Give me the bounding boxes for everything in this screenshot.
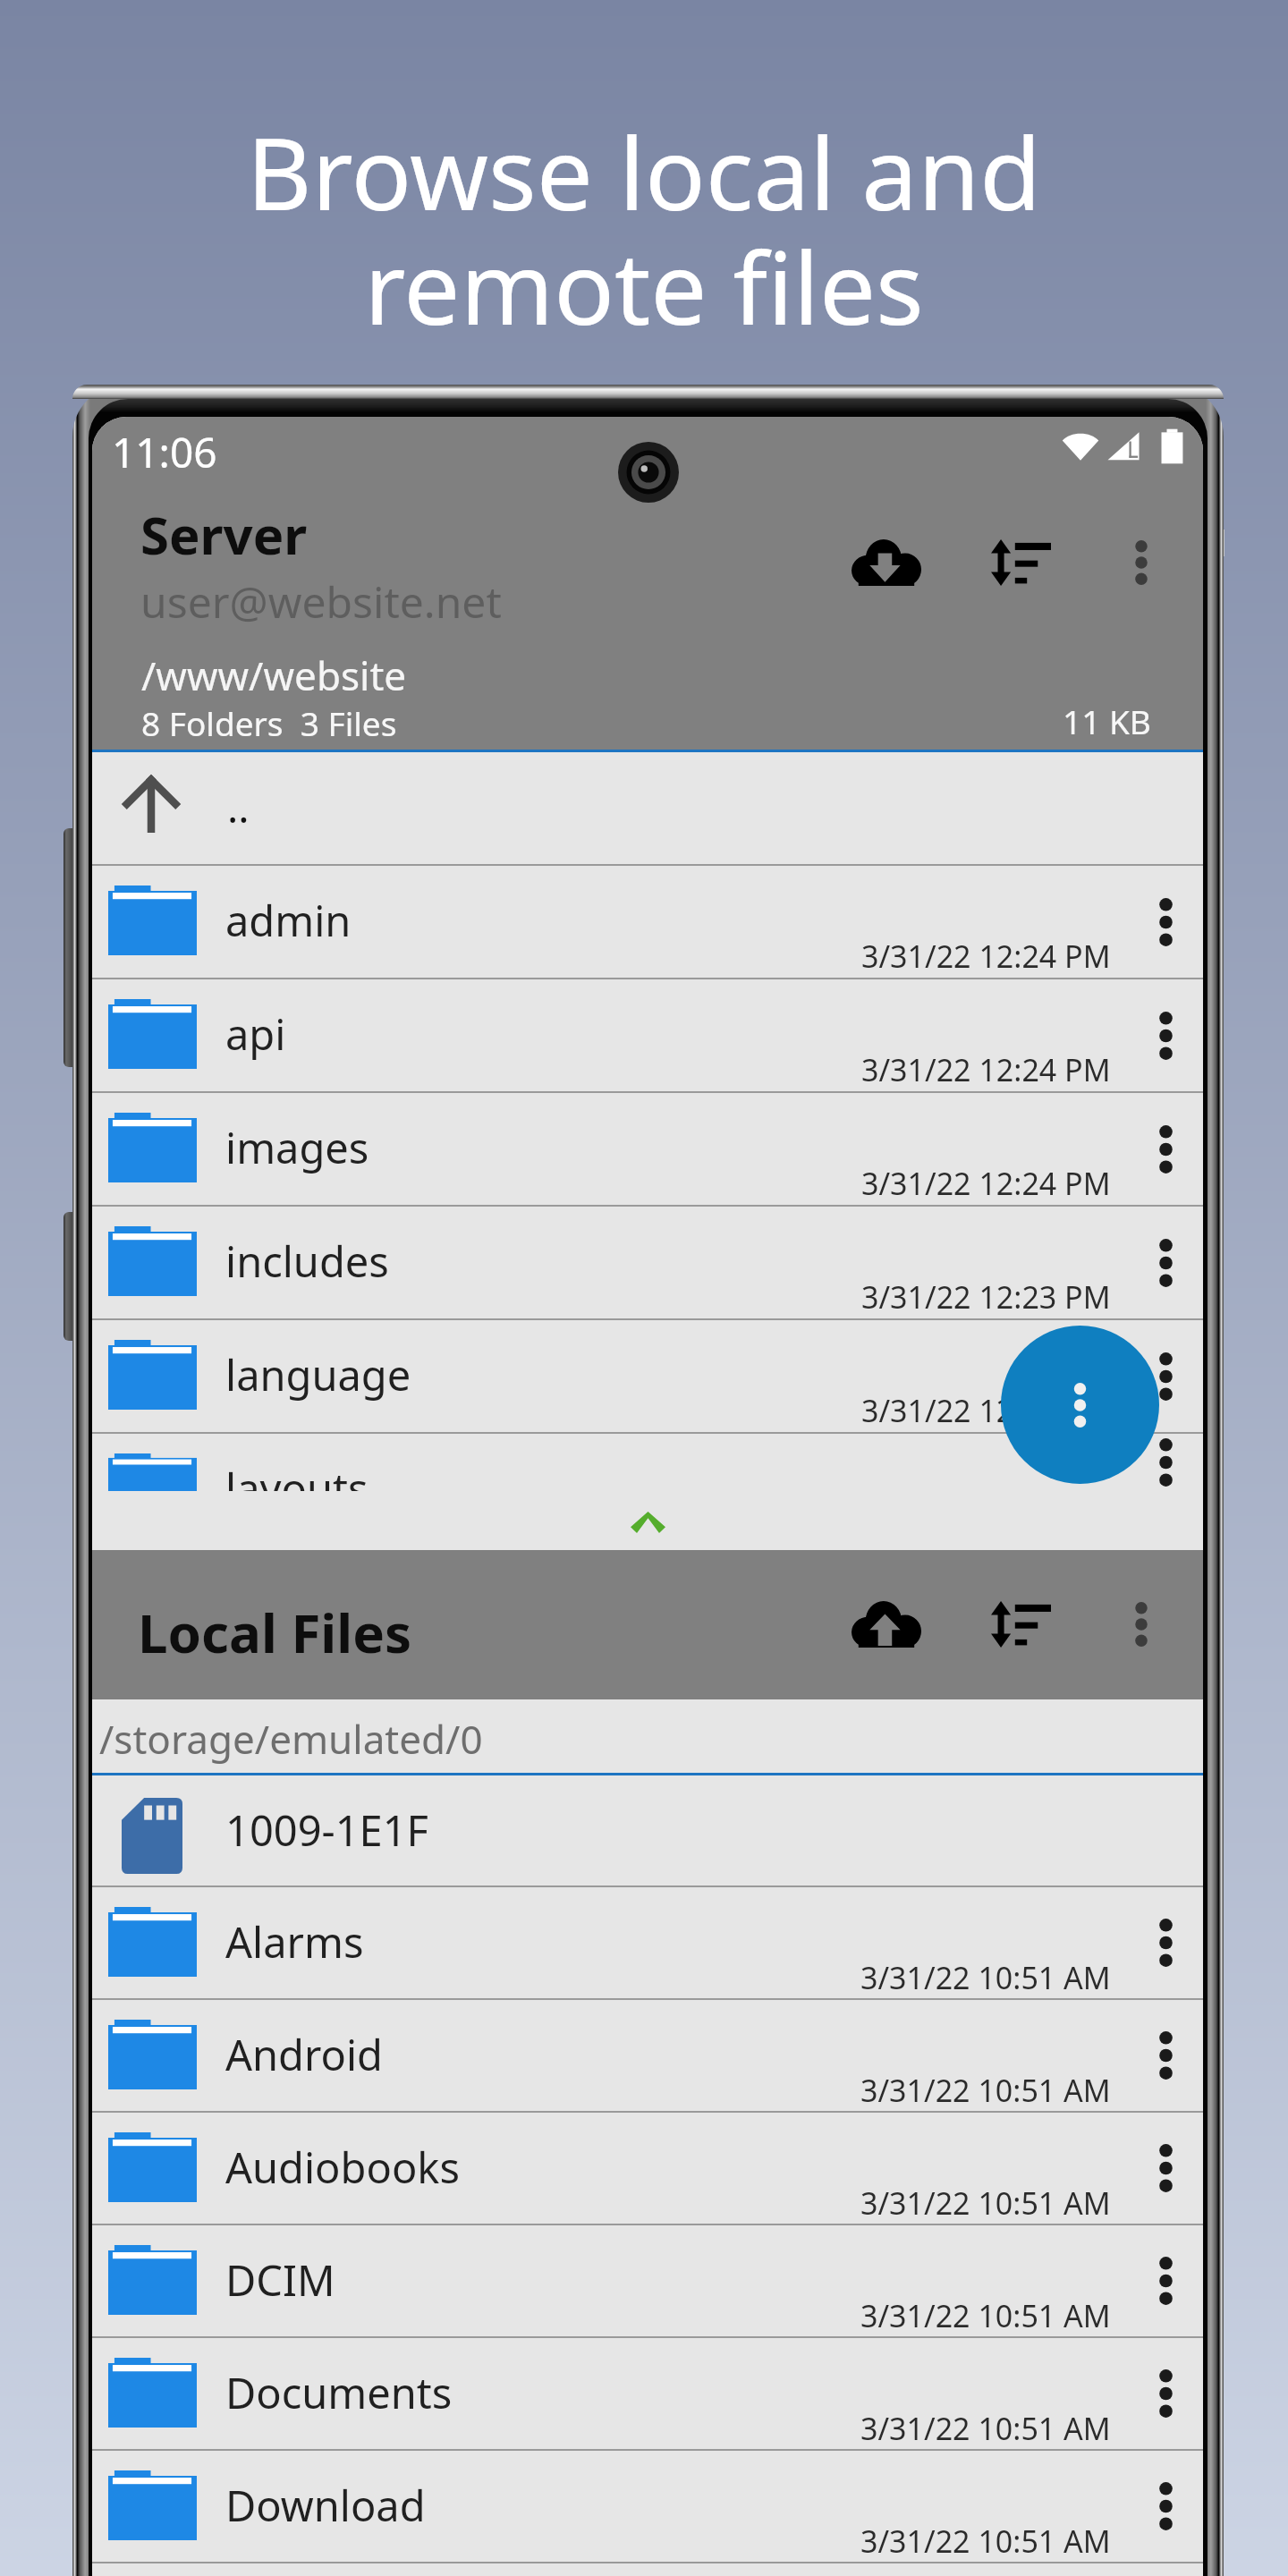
button[interactable]: Item options xyxy=(1128,2225,1203,2336)
button[interactable]: More options xyxy=(1104,521,1179,604)
staticText: 3/31/22 10:51 AM xyxy=(860,2070,1111,2111)
button[interactable]: Documents xyxy=(92,2338,1203,2449)
button[interactable]: Item options xyxy=(1128,979,1203,1091)
button[interactable]: Android xyxy=(92,2000,1203,2111)
staticText: 3/31/22 12:23 PM xyxy=(861,1390,1111,1431)
staticText: /www/website xyxy=(141,648,407,702)
staticText: includes xyxy=(225,1233,389,1290)
button[interactable]: Upload xyxy=(834,1583,939,1665)
staticText: 3/31/22 10:51 AM xyxy=(860,2182,1111,2224)
staticText: 3/31/22 10:51 AM xyxy=(860,1957,1111,1998)
button[interactable]: More actions xyxy=(1001,1326,1159,1484)
staticText: 1009-1E1F xyxy=(225,1801,428,1859)
button[interactable]: Item options xyxy=(1128,2338,1203,2449)
staticText: 3/31/22 10:51 AM xyxy=(860,2408,1111,2449)
button[interactable]: .. xyxy=(92,752,1203,864)
staticText: 3/31/22 10:51 AM xyxy=(860,2521,1111,2562)
staticText: 11 KB xyxy=(1063,699,1151,743)
button[interactable]: language xyxy=(92,1320,1203,1432)
staticText: 3/31/22 12:24 PM xyxy=(861,1163,1111,1204)
staticText: user@website.net xyxy=(140,572,502,631)
button[interactable]: admin xyxy=(92,866,1203,978)
staticText: Android xyxy=(225,2026,383,2083)
staticText: 3/31/22 12:24 PM xyxy=(861,1049,1111,1090)
button[interactable]: Sort xyxy=(973,1583,1069,1665)
button[interactable]: Download xyxy=(834,521,939,604)
staticText: 8 Folders 3 Files xyxy=(141,700,397,745)
staticText: 3/31/22 12:24 PM xyxy=(861,936,1111,977)
button[interactable]: Item options xyxy=(1128,2451,1203,2562)
button[interactable]: Item options xyxy=(1128,1207,1203,1318)
staticText: 3/31/22 12:23 PM xyxy=(861,1276,1111,1318)
staticText: Local Files xyxy=(138,1596,412,1669)
staticText: Documents xyxy=(225,2364,453,2421)
staticText: images xyxy=(225,1119,369,1176)
staticText: admin xyxy=(225,892,352,949)
button[interactable]: images xyxy=(92,1093,1203,1205)
button[interactable]: Sort xyxy=(973,521,1069,604)
button[interactable]: Item options xyxy=(1128,2113,1203,2224)
staticText: Audiobooks xyxy=(225,2139,460,2196)
staticText: .. xyxy=(227,779,250,835)
button[interactable]: Item options xyxy=(1128,866,1203,978)
staticText: Server xyxy=(140,499,308,570)
button[interactable]: Item options xyxy=(1128,1887,1203,1998)
staticText: /storage/emulated/0 xyxy=(99,1712,483,1766)
staticText: language xyxy=(225,1346,411,1403)
button[interactable]: includes xyxy=(92,1207,1203,1318)
staticText: layouts xyxy=(225,1460,369,1517)
button[interactable]: More options xyxy=(1104,1583,1179,1665)
button[interactable]: Audiobooks xyxy=(92,2113,1203,2224)
button[interactable]: Alarms xyxy=(92,1887,1203,1998)
button[interactable]: Download xyxy=(92,2451,1203,2562)
button[interactable]: 1009-1E1F xyxy=(92,1775,1203,1885)
button[interactable]: api xyxy=(92,979,1203,1091)
button[interactable]: Item options xyxy=(1128,1320,1203,1432)
staticText: 3/31/22 10:51 AM xyxy=(860,2295,1111,2336)
button[interactable]: layouts xyxy=(92,1434,1203,1491)
staticText: api xyxy=(225,1005,286,1063)
staticText: 11:06 xyxy=(112,424,217,480)
staticText: Browse local and remote files xyxy=(0,103,1288,354)
staticText: Alarms xyxy=(225,1913,364,1970)
staticText: DCIM xyxy=(225,2251,335,2309)
button[interactable]: Item options xyxy=(1128,2000,1203,2111)
staticText: Download xyxy=(225,2477,426,2534)
button[interactable]: DCIM xyxy=(92,2225,1203,2336)
button[interactable]: Item options xyxy=(1128,1093,1203,1205)
